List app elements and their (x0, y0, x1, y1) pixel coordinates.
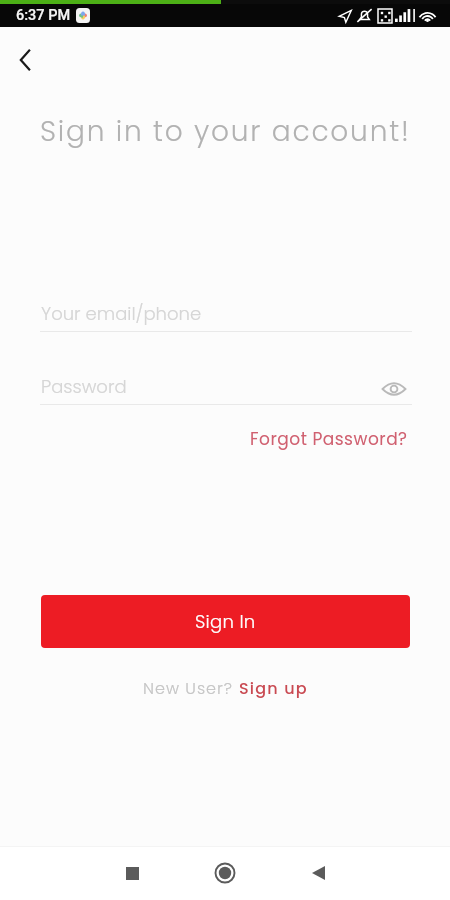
staticText: New User? (143, 677, 239, 699)
button[interactable]: Home (203, 851, 247, 895)
staticText: Sign in to your account! (40, 112, 411, 151)
staticText: Forgot Password? (250, 427, 408, 451)
staticText: Sign In (195, 609, 256, 634)
button[interactable]: Recent apps (110, 851, 154, 895)
button[interactable]: Sign up (239, 677, 308, 699)
button[interactable]: Sign In (41, 595, 410, 648)
button[interactable]: Show password (378, 373, 410, 405)
button[interactable]: Forgot Password? (250, 427, 408, 451)
staticText: Sign up (239, 677, 308, 699)
button[interactable]: Back (296, 851, 340, 895)
staticText: Password (41, 374, 127, 399)
staticText: Your email/phone (41, 301, 202, 326)
staticText: 6:37 PM (16, 7, 71, 24)
button[interactable]: Back (5, 41, 43, 79)
